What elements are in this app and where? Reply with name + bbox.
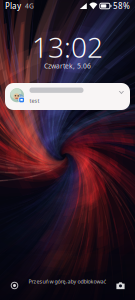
button[interactable]: test xyxy=(5,83,130,110)
button[interactable]: Camera xyxy=(113,278,127,292)
staticText: Czwartek, 5.06 xyxy=(44,62,91,70)
staticText: Play xyxy=(5,1,21,11)
staticText: test xyxy=(29,97,39,104)
button[interactable]: Phone xyxy=(7,278,21,292)
staticText: 4G xyxy=(21,2,34,10)
staticText: 58% xyxy=(113,1,130,11)
staticText: 13:02 xyxy=(32,28,103,66)
staticText: Przesuń w górę, aby odblokować xyxy=(28,278,106,285)
